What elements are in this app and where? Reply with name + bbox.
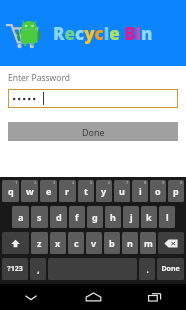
button[interactable]: c <box>68 232 84 254</box>
button[interactable]: z <box>31 232 48 254</box>
button[interactable]: r <box>59 180 76 202</box>
staticText: 2 <box>34 180 37 185</box>
button[interactable]: Done <box>8 122 178 141</box>
button[interactable]: Back <box>0 284 62 310</box>
button[interactable]: b <box>104 232 120 254</box>
staticText: 4 <box>72 180 75 185</box>
staticText: y <box>101 185 107 197</box>
button[interactable]: w <box>21 180 38 202</box>
staticText: d <box>56 211 62 223</box>
button[interactable]: Backspace <box>158 232 184 254</box>
button[interactable]: l <box>159 206 175 228</box>
staticText: s <box>37 211 42 223</box>
button[interactable]: Home <box>62 284 124 310</box>
button[interactable]: u <box>114 180 130 202</box>
staticText: w <box>26 185 34 197</box>
staticText: 1 <box>15 180 18 185</box>
staticText: i <box>139 185 142 197</box>
button[interactable]: a <box>12 206 29 228</box>
staticText: Done <box>161 264 180 274</box>
staticText: g <box>92 211 98 223</box>
staticText: 0 <box>180 180 183 185</box>
button[interactable]: h <box>105 206 121 228</box>
button[interactable]: f <box>69 206 85 228</box>
staticText: p <box>173 185 179 197</box>
staticText: t <box>84 185 88 197</box>
button[interactable] <box>8 89 178 108</box>
button[interactable]: q <box>2 180 19 202</box>
staticText: f <box>75 211 79 223</box>
staticText: Enter Password <box>8 72 71 84</box>
staticText: l <box>166 211 169 223</box>
staticText: e <box>46 185 52 197</box>
staticText: Done <box>82 126 105 138</box>
staticText: q <box>8 185 14 197</box>
staticText: n <box>127 237 133 249</box>
button[interactable]: Done <box>157 258 184 280</box>
button[interactable]: g <box>87 206 103 228</box>
button[interactable]: n <box>122 232 138 254</box>
button[interactable]: y <box>96 180 112 202</box>
button[interactable]: p <box>168 180 184 202</box>
staticText: ?123 <box>7 264 23 274</box>
button[interactable]: i <box>132 180 148 202</box>
staticText: v <box>91 237 97 249</box>
staticText: r <box>65 185 70 197</box>
staticText: 3 <box>53 180 56 185</box>
staticText: h <box>110 211 116 223</box>
staticText: a <box>18 211 24 223</box>
staticText: 6 <box>108 180 111 185</box>
button[interactable]: Recents <box>124 284 186 310</box>
button[interactable]: s <box>31 206 48 228</box>
button[interactable]: ?123 <box>2 258 28 280</box>
staticText: 8 <box>144 180 147 185</box>
button[interactable]: v <box>86 232 102 254</box>
staticText: 7 <box>126 180 129 185</box>
staticText: . <box>146 264 149 275</box>
button[interactable]: k <box>141 206 157 228</box>
staticText: x <box>55 237 61 249</box>
button[interactable]: Shift <box>2 232 29 254</box>
button[interactable]: . <box>139 258 155 280</box>
staticText: Recycle Bin <box>53 22 153 45</box>
staticText: c <box>74 237 79 249</box>
button[interactable]: e <box>40 180 57 202</box>
staticText: u <box>119 185 125 197</box>
staticText: 5 <box>90 180 93 185</box>
staticText: b <box>109 237 115 249</box>
staticText: , <box>37 264 40 275</box>
button[interactable]: m <box>140 232 156 254</box>
staticText: 9 <box>162 180 165 185</box>
staticText: m <box>144 237 153 249</box>
button[interactable]: o <box>150 180 166 202</box>
button[interactable]: t <box>78 180 94 202</box>
staticText: k <box>146 211 152 223</box>
button[interactable]: d <box>50 206 67 228</box>
staticText: z <box>37 237 42 249</box>
staticText: j <box>130 211 133 223</box>
staticText: o <box>155 185 161 197</box>
button[interactable]: j <box>123 206 139 228</box>
button[interactable]: , <box>30 258 46 280</box>
button[interactable]: x <box>50 232 66 254</box>
